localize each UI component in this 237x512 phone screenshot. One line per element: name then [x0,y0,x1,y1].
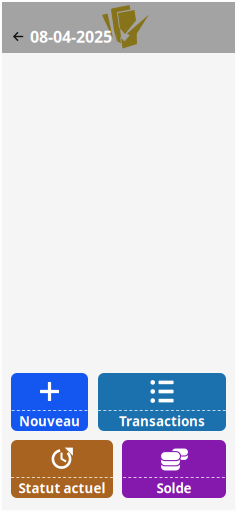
button[interactable]: Statut actuel [11,440,113,498]
staticText: Transactions [119,412,205,430]
staticText: 08-04-2025 [30,26,112,47]
button[interactable]: Back [2,18,30,54]
button[interactable]: Nouveau [11,373,88,431]
button[interactable]: Transactions [98,373,226,431]
staticText: Nouveau [19,412,80,430]
staticText: Solde [156,479,191,497]
button[interactable]: Solde [122,440,226,498]
staticText: Statut actuel [18,479,105,497]
